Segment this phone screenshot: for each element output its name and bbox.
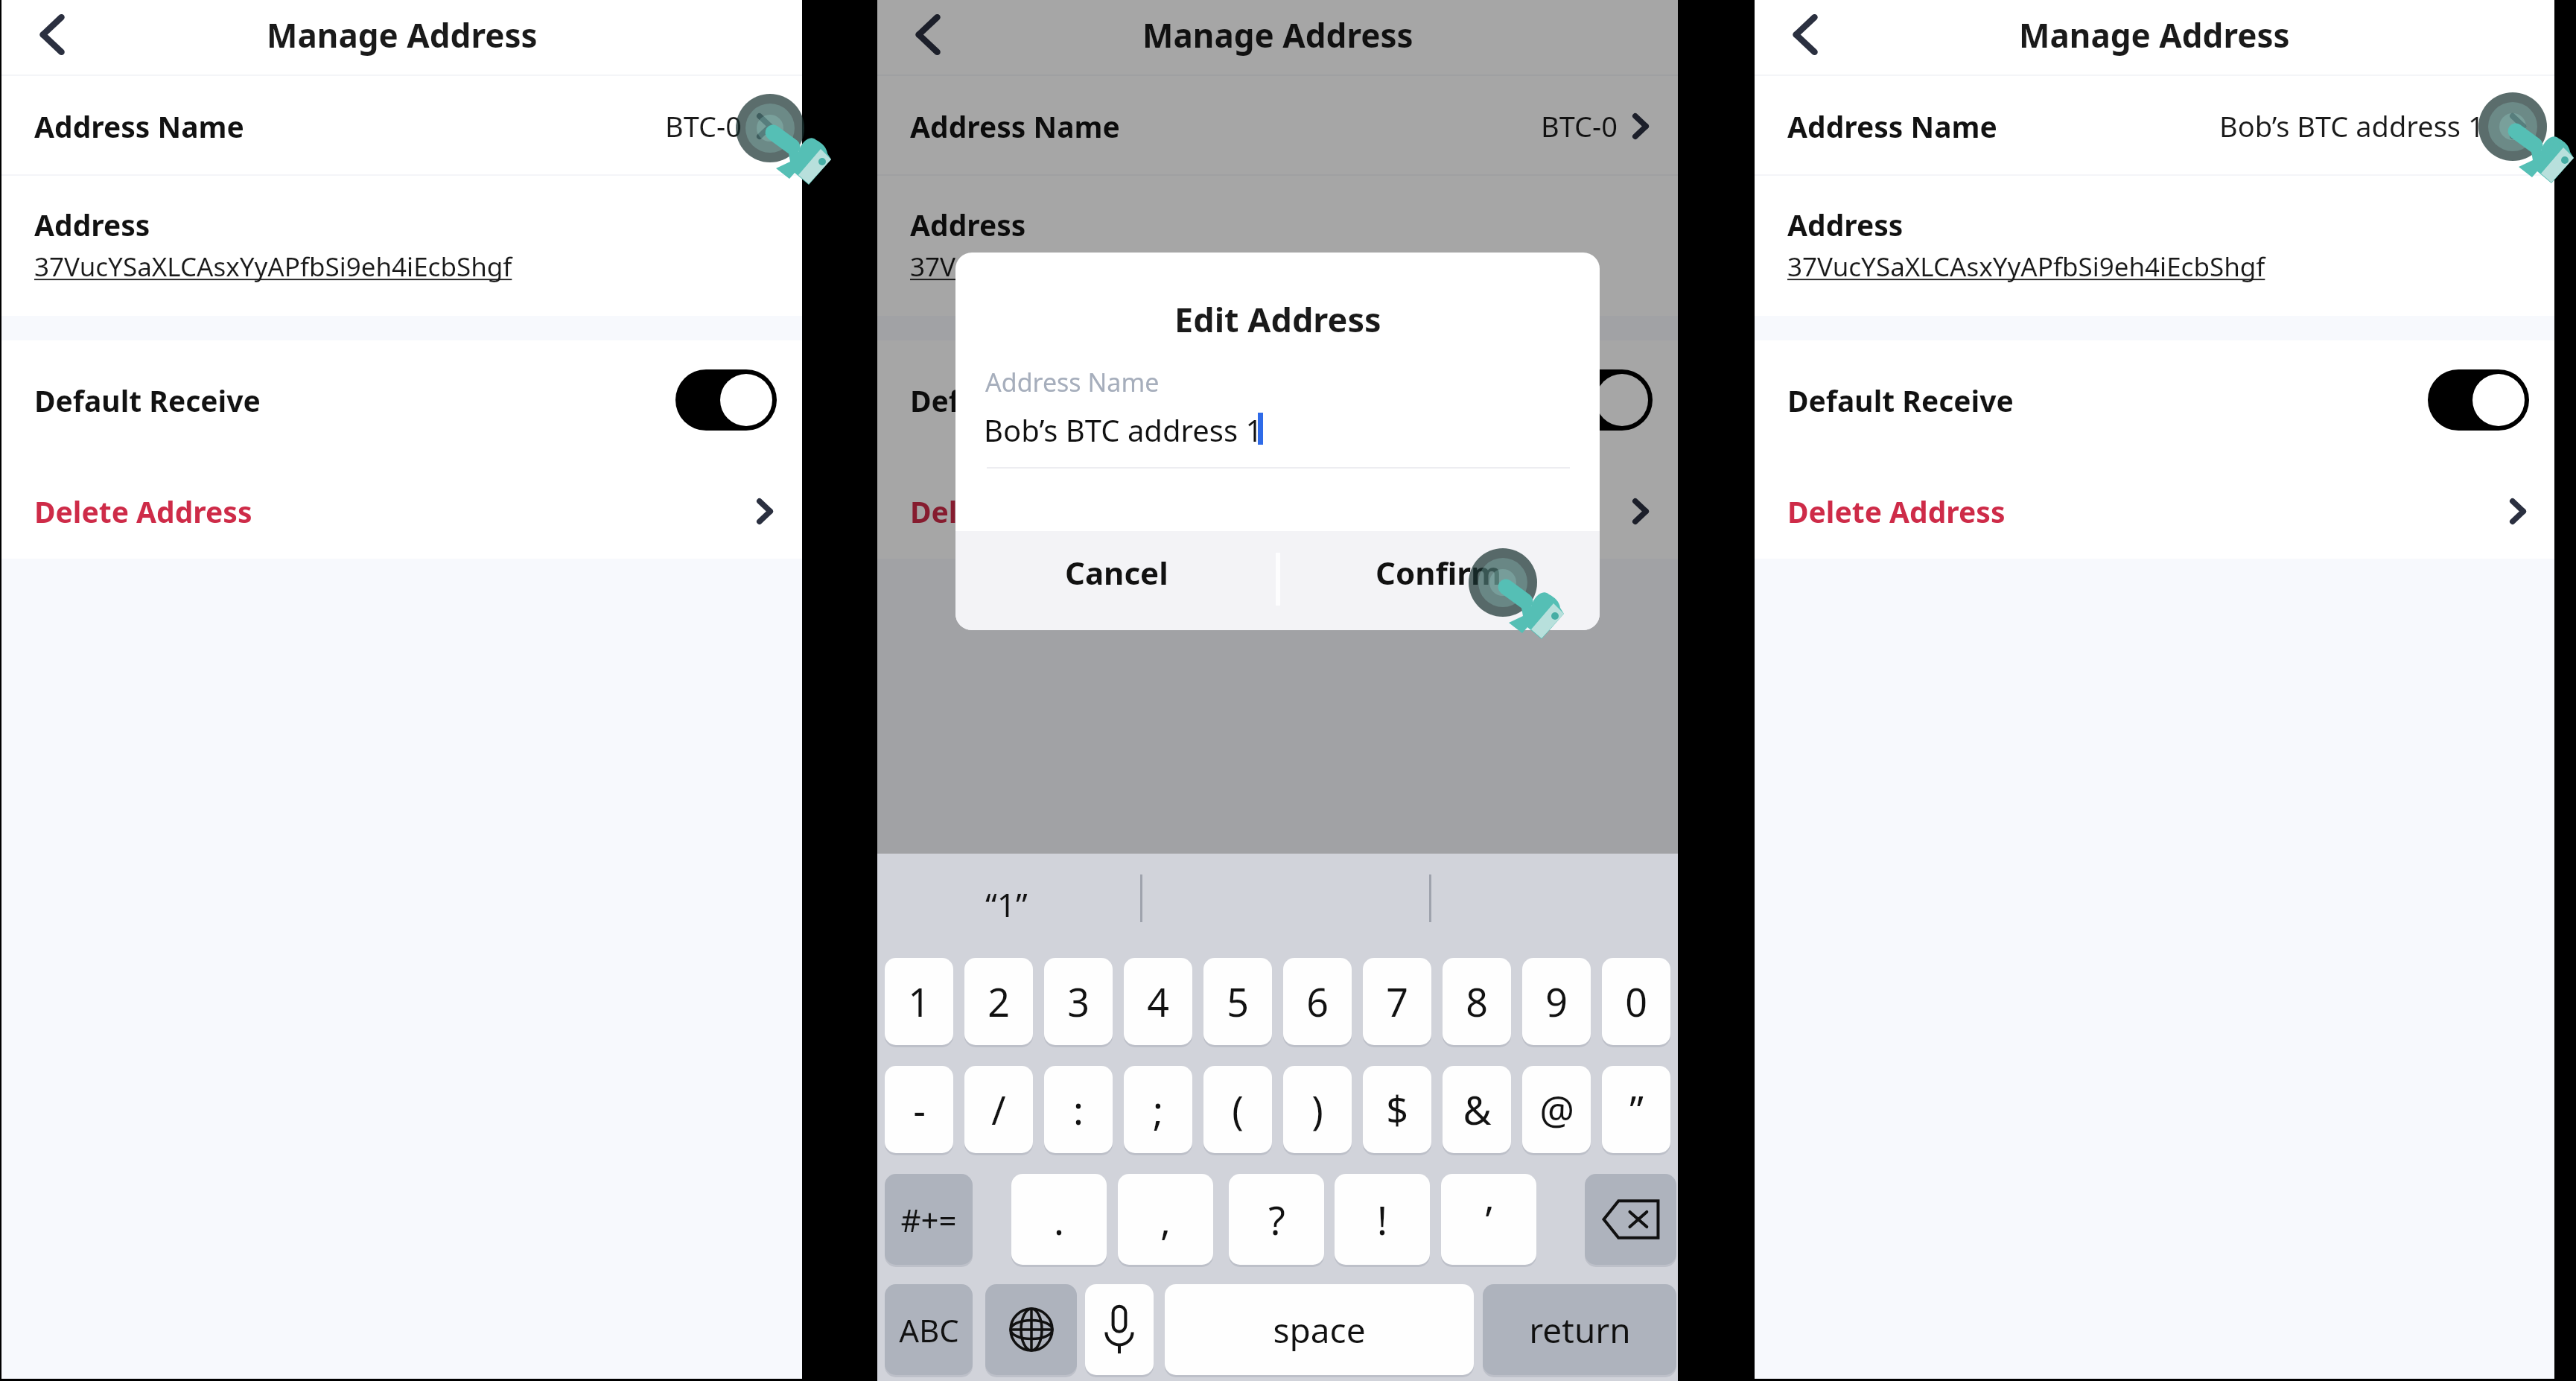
button[interactable]: ? [1229,1174,1324,1265]
staticText: 9 [1545,975,1568,1028]
button[interactable]: @ [1522,1066,1591,1153]
staticText: 7 [1386,975,1408,1028]
staticText: Default Receive [34,381,261,420]
button[interactable]: 3 [1044,958,1113,1045]
staticText: space [1273,1307,1366,1353]
staticText: ) [1311,1083,1323,1136]
button[interactable]: #+= [885,1174,973,1265]
staticText: Bob’s BTC address 1 [984,410,1263,450]
staticText: Address Name [34,107,244,146]
button[interactable]: Back [24,0,79,69]
button[interactable]: Delete Address [877,459,1678,562]
staticText: ; [1153,1083,1163,1136]
staticText: $ [1386,1083,1408,1136]
button[interactable]: 9 [1522,958,1591,1045]
staticText: ’ [1485,1193,1492,1246]
staticText: 3 [1067,975,1090,1028]
staticText: ( [1232,1083,1244,1136]
staticText: Confirm [1376,551,1502,594]
staticText: 4 [1147,975,1169,1028]
button[interactable]: return [1483,1284,1676,1375]
staticText: Manage Address [267,13,538,57]
button[interactable]: ( [1203,1066,1272,1153]
button[interactable]: ’ [1441,1174,1536,1265]
button[interactable]: Default receive toggle [2428,369,2529,431]
staticText: 37VucYSaXLCAsxYyAPfbSi9eh4iEcbShgf [34,249,512,285]
button[interactable]: Dictation [1085,1284,1154,1375]
staticText: Address Name [910,107,1120,146]
staticText: 37VucYSaXLCAsxYyAPfbSi9eh4iEcbShgf [1787,249,2265,285]
staticText: Address Name [985,365,1160,399]
staticText: / [991,1083,1006,1136]
button[interactable]: : [1044,1066,1113,1153]
staticText: @ [1539,1083,1574,1136]
button[interactable]: ABC [885,1284,973,1375]
staticText: Bob’s BTC address 1 [2219,107,2484,145]
staticText: #+= [900,1199,957,1241]
button[interactable]: Address Name [877,76,1678,174]
staticText: 2 [988,975,1010,1028]
button[interactable]: / [964,1066,1033,1153]
button[interactable]: 5 [1203,958,1272,1045]
button[interactable]: - [885,1066,953,1153]
staticText: 8 [1466,975,1488,1028]
staticText: 5 [1227,975,1249,1028]
staticText: Cancel [1065,551,1168,594]
button[interactable]: Default Receive [1755,340,2554,459]
button[interactable]: Default Receive [877,340,1678,459]
staticText: & [1463,1083,1492,1136]
button[interactable]: 2 [964,958,1033,1045]
staticText: 0 [1625,975,1647,1028]
button[interactable]: 4 [1124,958,1192,1045]
button[interactable]: & [1443,1066,1511,1153]
staticText: Delete Address [910,492,1128,531]
button[interactable]: Delete Address [1755,459,2554,562]
button[interactable]: ” [1602,1066,1670,1153]
staticText: Manage Address [2019,13,2290,57]
button[interactable]: 1 [885,958,953,1045]
staticText: “1” [985,882,1028,927]
button[interactable]: Address Name [1755,76,2554,174]
staticText: Address [34,205,150,244]
button[interactable]: Cancel [955,531,1277,630]
staticText: BTC-0 [665,107,742,145]
button[interactable]: . [1011,1174,1107,1265]
staticText: Address [1787,205,1904,244]
button[interactable]: Default receive toggle [1551,369,1653,431]
button[interactable]: Backspace [1585,1174,1676,1265]
button[interactable]: 0 [1602,958,1670,1045]
button[interactable]: space [1165,1284,1474,1375]
button[interactable]: Switch keyboard language [985,1284,1077,1375]
staticText: Default Receive [910,381,1136,420]
button[interactable]: Delete Address [1,459,802,562]
button[interactable]: , [1118,1174,1213,1265]
staticText: return [1529,1307,1631,1353]
button[interactable]: Address Name [1,76,802,174]
button[interactable]: Confirm [1277,531,1600,630]
staticText: - [913,1083,926,1136]
staticText: : [1073,1083,1084,1136]
staticText: 6 [1306,975,1329,1028]
button[interactable]: 7 [1363,958,1431,1045]
staticText: 37VucYSaXLCAsxYyAPfbSi9eh4iEcbShgf [910,249,1388,285]
staticText: Edit Address [1174,296,1381,342]
staticText: BTC-0 [1541,107,1618,145]
button[interactable]: ) [1283,1066,1352,1153]
button[interactable]: Back [900,0,955,69]
button[interactable]: Default receive toggle [675,369,777,431]
staticText: Delete Address [34,492,252,531]
button[interactable]: 8 [1443,958,1511,1045]
staticText: , [1160,1193,1171,1246]
staticText: Address [910,205,1026,244]
button[interactable]: Default Receive [1,340,802,459]
staticText: ABC [899,1309,959,1351]
button[interactable]: Back [1777,0,1832,69]
staticText: ! [1377,1193,1387,1246]
staticText: ? [1268,1193,1285,1246]
button[interactable]: 6 [1283,958,1352,1045]
button[interactable]: ; [1124,1066,1192,1153]
button[interactable]: ! [1335,1174,1430,1265]
staticText: Default Receive [1787,381,2014,420]
staticText: Delete Address [1787,492,2006,531]
button[interactable]: $ [1363,1066,1431,1153]
